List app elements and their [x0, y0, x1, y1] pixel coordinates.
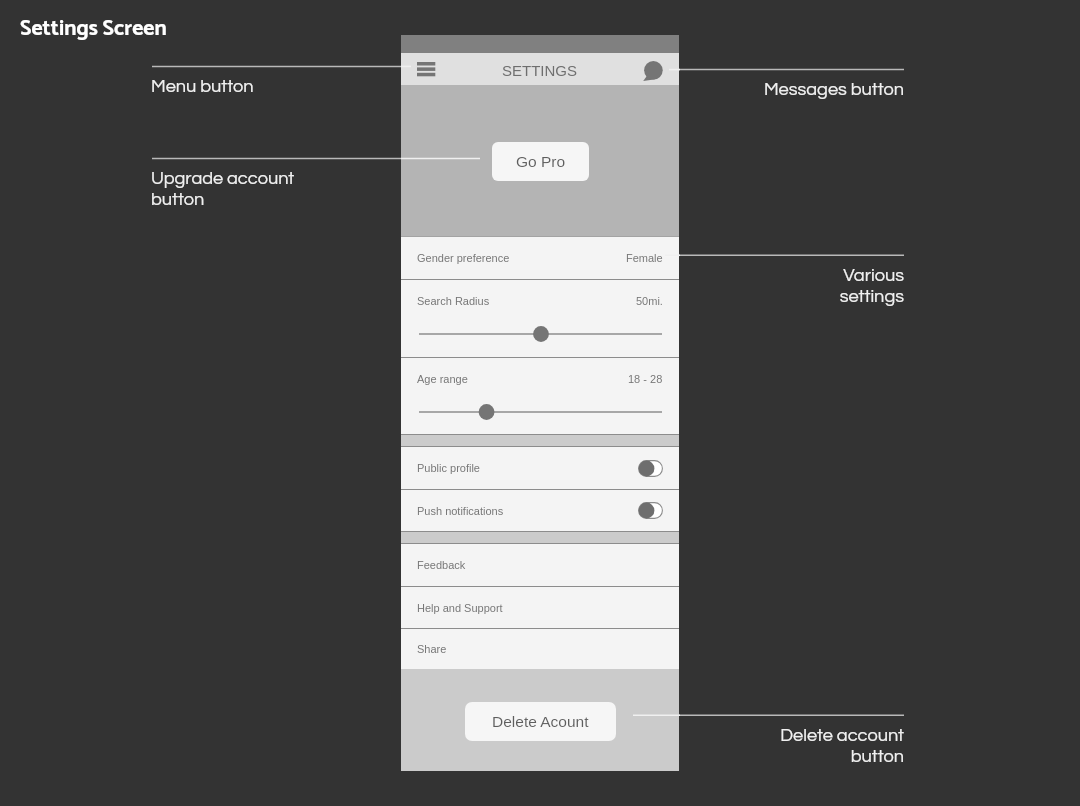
staticText: Feedback [417, 559, 466, 571]
button[interactable]: Delete Acount [465, 702, 616, 741]
button[interactable]: Public profile [401, 447, 679, 489]
staticText: Settings Screen [20, 11, 167, 46]
staticText: Menu button [151, 77, 254, 96]
button[interactable]: Help and Support [401, 587, 679, 628]
staticText: SETTINGS [502, 62, 578, 79]
button[interactable]: Search Radius [401, 280, 679, 357]
staticText: Various settings [604, 266, 904, 306]
staticText: Gender preference [417, 252, 510, 264]
staticText: Push notifications [417, 505, 504, 517]
button[interactable]: Age range [401, 358, 679, 434]
staticText: 50mi. [636, 295, 663, 307]
staticText: Upgrade account button [151, 169, 295, 209]
staticText: Age range [417, 373, 468, 385]
staticText: Search Radius [417, 295, 490, 307]
staticText: Delete account button [604, 726, 904, 766]
staticText: Help and Support [417, 602, 503, 614]
button[interactable]: Share [401, 629, 679, 669]
staticText: Messages button [604, 80, 904, 99]
staticText: Share [417, 643, 447, 655]
button[interactable]: Messages [633, 53, 679, 85]
staticText: Public profile [417, 462, 480, 474]
staticText: Go Pro [516, 153, 566, 170]
button[interactable]: Push notifications [401, 490, 679, 531]
button[interactable]: Feedback [401, 544, 679, 586]
button[interactable]: Menu [401, 53, 447, 85]
staticText: 18 - 28 [628, 373, 663, 385]
staticText: Delete Acount [492, 713, 589, 730]
staticText: Female [626, 252, 663, 264]
button[interactable]: Gender preference [401, 237, 679, 279]
button[interactable]: Go Pro [492, 142, 589, 181]
